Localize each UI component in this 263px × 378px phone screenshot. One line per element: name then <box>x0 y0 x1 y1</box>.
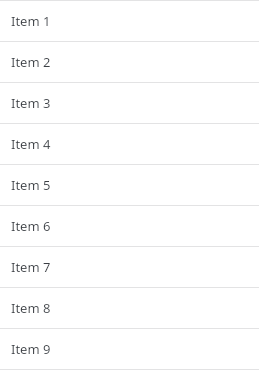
button[interactable]: Item 9 <box>0 329 259 369</box>
staticText: Item 2 <box>11 53 51 71</box>
button[interactable]: Item 3 <box>0 83 259 123</box>
staticText: Item 4 <box>11 135 51 153</box>
button[interactable]: Item 2 <box>0 42 259 82</box>
staticText: Item 6 <box>11 217 51 235</box>
button[interactable]: Item 7 <box>0 247 259 287</box>
staticText: Item 8 <box>11 299 51 317</box>
staticText: Item 7 <box>11 258 51 276</box>
staticText: Item 5 <box>11 176 51 194</box>
staticText: Item 1 <box>11 12 51 30</box>
button[interactable]: Item 1 <box>0 1 259 41</box>
button[interactable]: Item 5 <box>0 165 259 205</box>
button[interactable]: Item 8 <box>0 288 259 328</box>
staticText: Item 9 <box>11 340 51 358</box>
button[interactable]: Item 4 <box>0 124 259 164</box>
button[interactable]: Item 6 <box>0 206 259 246</box>
staticText: Item 3 <box>11 94 51 112</box>
